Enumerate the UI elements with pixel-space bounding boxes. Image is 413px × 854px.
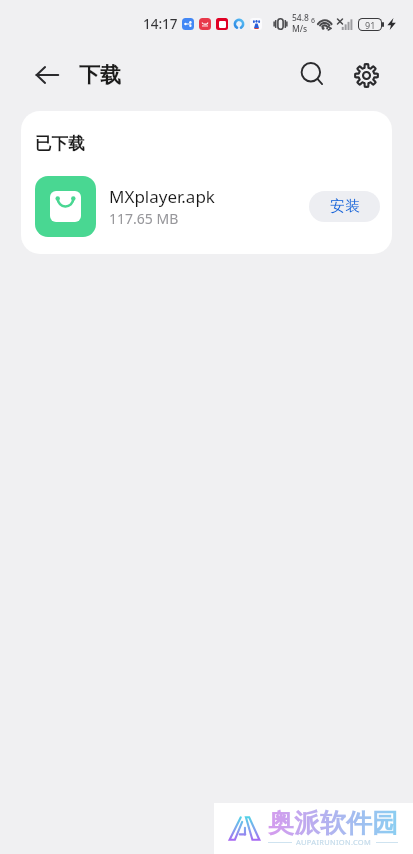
button[interactable]: Search <box>295 57 331 93</box>
button[interactable]: 安装 <box>309 191 380 222</box>
staticText: 奥派软件园 <box>268 807 398 840</box>
staticText: AUPAIRUNION.COM <box>296 837 372 847</box>
button[interactable]: Settings <box>348 57 384 93</box>
staticText: 117.65 MB <box>109 209 179 228</box>
staticText: 已下载 <box>35 133 85 154</box>
staticText: 6 <box>311 16 316 26</box>
button[interactable]: Back <box>29 57 65 93</box>
staticText: 14:17 <box>143 15 178 33</box>
staticText: 91 <box>365 19 376 30</box>
staticText: 54.8 <box>292 12 309 24</box>
staticText: MXplayer.apk <box>109 185 215 208</box>
staticText: 下载 <box>79 62 121 88</box>
button[interactable]: MXplayer.apk <box>21 174 392 239</box>
staticText: M/s <box>292 23 308 35</box>
staticText: 安装 <box>330 197 360 216</box>
